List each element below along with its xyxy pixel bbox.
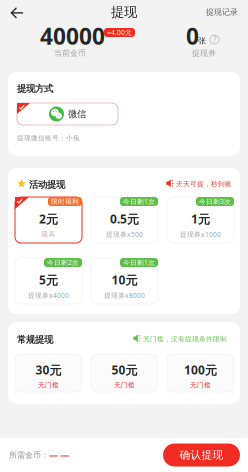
staticText: 100元 [184,362,217,378]
staticText: 活动提现 [29,179,65,190]
button[interactable]: 10元 [91,258,158,304]
button[interactable]: 100元 [167,354,234,392]
staticText: 0.5元 [110,211,139,227]
staticText: 40000 [40,21,105,51]
button[interactable]: 1元 [167,197,234,243]
staticText: 无门槛，没有提现条件限制 [143,335,227,343]
button[interactable]: 确认提现 [163,443,240,466]
staticText: 张 [198,36,206,46]
staticText: 提现券x1000 [180,230,221,239]
staticText: 所需金币： [9,450,49,460]
button[interactable]: 30元 [15,354,82,392]
button[interactable]: 0.5元 [91,197,158,243]
staticText: 提现券x4000 [28,291,69,300]
staticText: 0 [186,21,199,51]
button[interactable]: 提现记录 [200,1,244,23]
staticText: 无门槛 [114,381,135,389]
staticText: =4.00元 [107,28,132,37]
staticText: 10元 [111,272,137,288]
staticText: 当前金币 [54,48,86,58]
button[interactable]: 5元 [15,258,82,304]
staticText: — — [49,449,69,461]
staticText: 2元 [39,211,58,227]
staticText: 提现方式 [17,83,53,94]
staticText: 提现微信账号：小兔 [17,134,80,142]
staticText: 微信 [68,108,86,120]
staticText: 50元 [111,362,137,378]
staticText: 常规提现 [17,334,53,345]
button[interactable]: 微信 [17,103,118,125]
button[interactable]: 2元 [15,197,82,243]
staticText: 1元 [191,211,210,227]
staticText: 今日剩1次 [123,258,155,267]
staticText: 提现券x8000 [104,291,145,300]
staticText: 今日剩3次 [199,197,231,206]
staticText: 确认提现 [179,448,223,461]
staticText: 30元 [35,362,61,378]
staticText: 提现 [111,4,137,20]
staticText: 限时福利 [51,197,79,206]
staticText: 提现券 [192,48,216,58]
staticText: 无门槛 [190,381,211,389]
staticText: 无门槛 [38,381,59,389]
staticText: 今日剩1次 [123,197,155,206]
button[interactable]: Back [4,2,30,24]
staticText: 今日剩2次 [47,258,79,267]
button[interactable]: 50元 [91,354,158,392]
staticText: 5元 [39,272,58,288]
staticText: 最高 [41,230,55,238]
staticText: 提现记录 [206,7,238,17]
staticText: 提现券x500 [106,230,143,239]
staticText: 天天可提，秒到账 [176,180,232,188]
staticText: ? [213,34,216,45]
